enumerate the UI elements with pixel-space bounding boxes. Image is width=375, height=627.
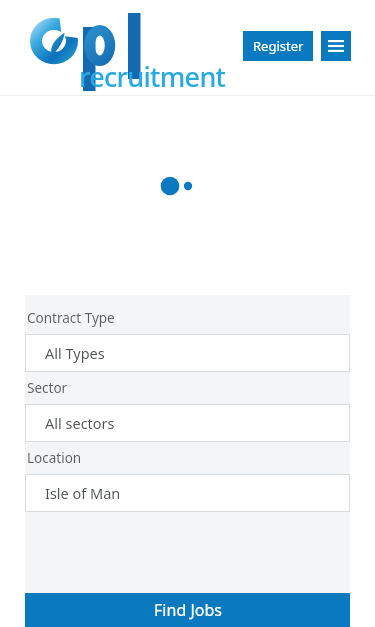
staticText: Register [253, 37, 304, 55]
staticText: recruitment [79, 58, 226, 95]
staticText: Contract Type [27, 309, 115, 327]
button[interactable]: Register [243, 31, 313, 61]
staticText: Location [27, 449, 82, 467]
staticText: All Types [45, 343, 105, 363]
button[interactable]: cpl recruitment home [28, 13, 233, 91]
staticText: Sector [27, 379, 68, 397]
staticText: Find Jobs [154, 599, 222, 621]
staticText: Isle of Man [45, 483, 121, 503]
staticText: All sectors [45, 413, 115, 433]
button[interactable]: All Types [25, 334, 350, 372]
button[interactable]: Find Jobs [25, 593, 350, 627]
button[interactable]: All sectors [25, 404, 350, 442]
button[interactable]: Menu [321, 31, 351, 61]
button[interactable]: Isle of Man [25, 474, 350, 512]
